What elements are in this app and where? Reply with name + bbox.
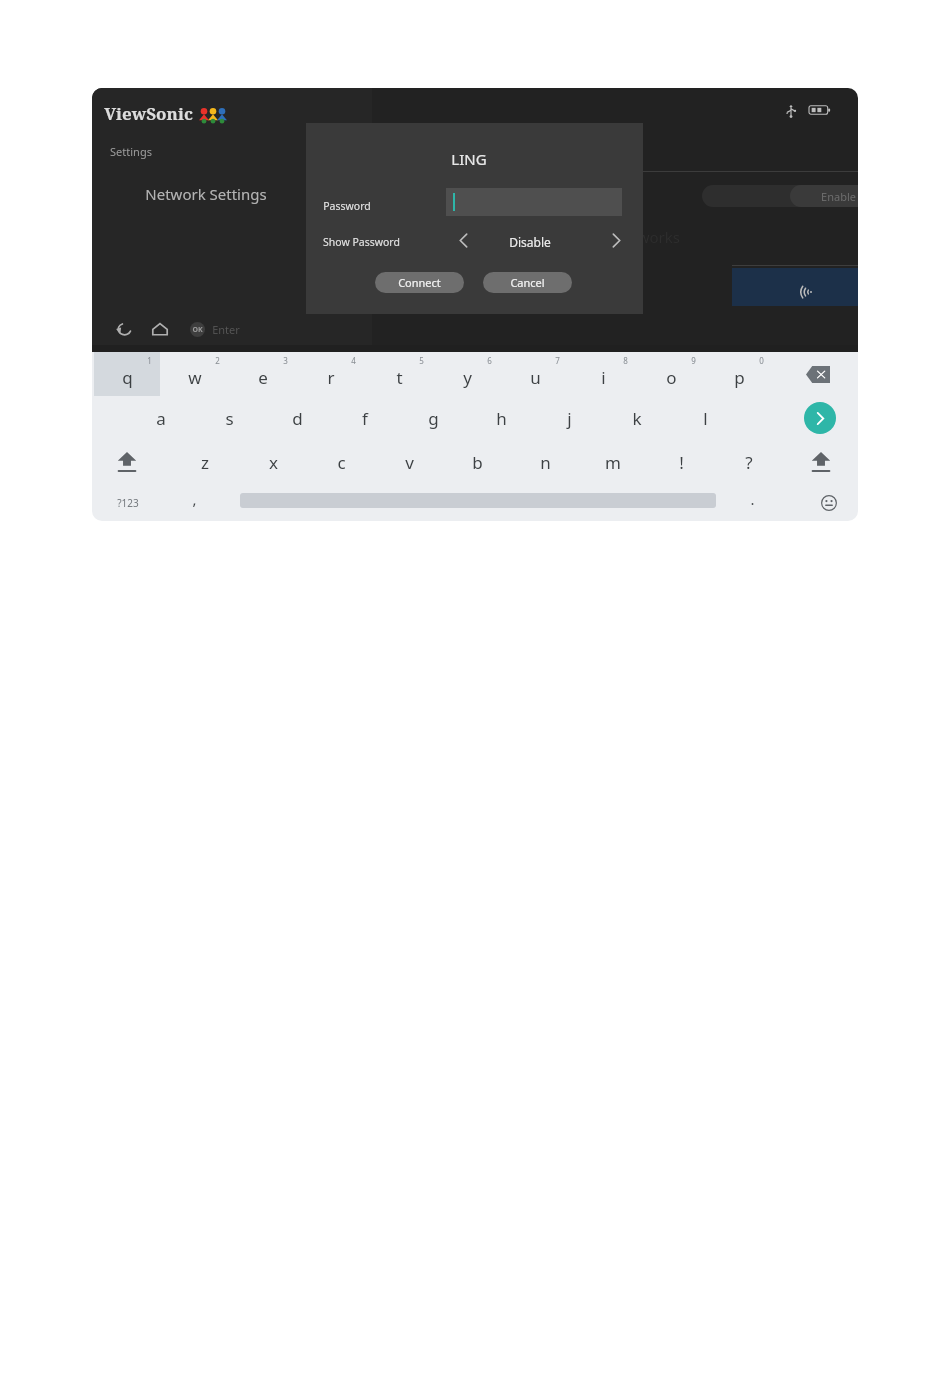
button[interactable]: f [332,396,398,440]
button[interactable]: ! [648,440,714,484]
staticText: a [156,407,166,430]
staticText: l [703,407,708,430]
button[interactable]: Shift [102,440,152,484]
button[interactable]: . [730,484,774,521]
staticText: ! [679,451,684,474]
button[interactable]: b [444,440,510,484]
staticText: t [396,366,403,389]
button[interactable]: Enter [804,402,836,434]
button[interactable]: v [376,440,442,484]
staticText: p [734,366,745,389]
staticText: Available Networks [545,227,680,247]
staticText: Connect [398,275,441,290]
staticText: e [258,366,268,389]
button[interactable]: ? [716,440,782,484]
button[interactable]: , [172,484,216,521]
staticText: u [530,366,541,389]
button[interactable]: 1 [94,352,160,396]
staticText: Cancel [510,275,545,290]
button[interactable]: m [580,440,646,484]
button[interactable]: z [172,440,238,484]
button[interactable] [702,185,812,207]
staticText: 2 [215,355,220,366]
staticText: ?123 [117,496,139,510]
staticText: f [362,407,368,430]
staticText: d [292,407,303,430]
button[interactable]: Backspace [796,357,840,391]
staticText: ViewSonic [104,102,193,125]
staticText: 9 [691,355,696,366]
button[interactable]: l [672,396,738,440]
button[interactable]: 0 [706,352,772,396]
button[interactable]: Connect [375,272,464,293]
button[interactable]: 3 [230,352,296,396]
staticText: 5 [419,355,424,366]
button[interactable]: 9 [638,352,704,396]
staticText: 0 [759,355,764,366]
staticText: 6 [487,355,492,366]
staticText: ? [745,451,753,474]
button[interactable]: 8 [570,352,636,396]
button[interactable]: Shift [796,440,846,484]
staticText: Settings [110,144,152,159]
button[interactable]: d [264,396,330,440]
button[interactable]: Enable [790,185,858,207]
staticText: 1 [147,355,152,366]
staticText: n [540,451,551,474]
staticText: v [405,451,414,474]
button[interactable]: n [512,440,578,484]
staticText: y [463,366,472,389]
staticText: Enter [212,322,240,337]
staticText: LING [451,149,487,169]
button[interactable]: k [604,396,670,440]
staticText: k [632,407,642,430]
staticText: x [269,451,278,474]
button[interactable]: g [400,396,466,440]
staticText: j [567,407,572,430]
button[interactable]: Emoji [814,488,844,518]
staticText: . [750,489,755,509]
staticText: b [472,451,483,474]
button[interactable]: 2 [162,352,228,396]
button[interactable]: Previous [450,227,476,253]
button[interactable]: 7 [502,352,568,396]
button[interactable] [446,188,622,216]
staticText: Disable [509,234,551,250]
button[interactable]: 6 [434,352,500,396]
staticText: w [188,366,202,389]
staticText: Network Settings [145,184,267,204]
staticText: 7 [555,355,560,366]
staticText: Password [323,199,371,213]
button[interactable]: Next [603,227,629,253]
staticText: , [192,489,197,509]
button[interactable]: c [308,440,374,484]
button[interactable]: Home [148,317,172,341]
staticText: h [496,407,507,430]
button[interactable]: Cancel [483,272,572,293]
staticText: z [201,451,209,474]
button[interactable]: h [468,396,534,440]
staticText: r [327,366,335,389]
button[interactable]: j [536,396,602,440]
button[interactable]: 4 [298,352,364,396]
staticText: i [601,366,606,389]
button[interactable]: x [240,440,306,484]
button[interactable]: Back [112,317,136,341]
staticText: 8 [623,355,628,366]
button[interactable]: s [196,396,262,440]
staticText: g [428,407,439,430]
staticText: q [122,366,133,389]
staticText: OK [192,325,203,335]
staticText: o [666,366,677,389]
staticText: Enable [821,189,856,204]
staticText: 4 [351,355,356,366]
button[interactable]: 5 [366,352,432,396]
staticText: Show Password [323,235,400,249]
staticText: 3 [283,355,288,366]
button[interactable] [732,268,858,306]
button[interactable]: ?123 [102,484,154,521]
staticText: m [605,451,621,474]
button[interactable]: a [128,396,194,440]
